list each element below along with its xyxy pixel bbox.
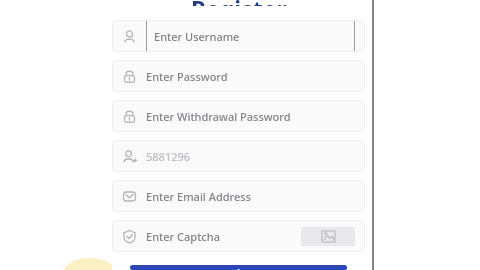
button[interactable]: Captcha (112, 220, 365, 252)
other: Email address (122, 189, 137, 204)
staticText: Enter Username (154, 29, 240, 44)
staticText: Enter Captcha (146, 229, 220, 244)
staticText: Enter Password (146, 69, 228, 84)
staticText: Register (213, 265, 265, 270)
staticText: Enter Withdrawal Password (146, 109, 291, 124)
button[interactable]: Register (130, 265, 347, 270)
button[interactable]: Username (112, 20, 365, 52)
button[interactable]: Referral code (112, 140, 365, 172)
other: Referral code (122, 149, 137, 164)
other: Password (122, 109, 137, 124)
other: Password (122, 69, 137, 84)
button[interactable]: Password (112, 60, 365, 92)
staticText: 5881296 (146, 149, 191, 164)
staticText: Enter Email Address (146, 189, 251, 204)
staticText: Register (191, 0, 287, 6)
button[interactable]: Password (112, 100, 365, 132)
button[interactable]: Captcha image, tap to refresh (301, 227, 355, 246)
other: Username (122, 29, 137, 44)
button[interactable]: Email address (112, 180, 365, 212)
other: Captcha (122, 229, 137, 244)
